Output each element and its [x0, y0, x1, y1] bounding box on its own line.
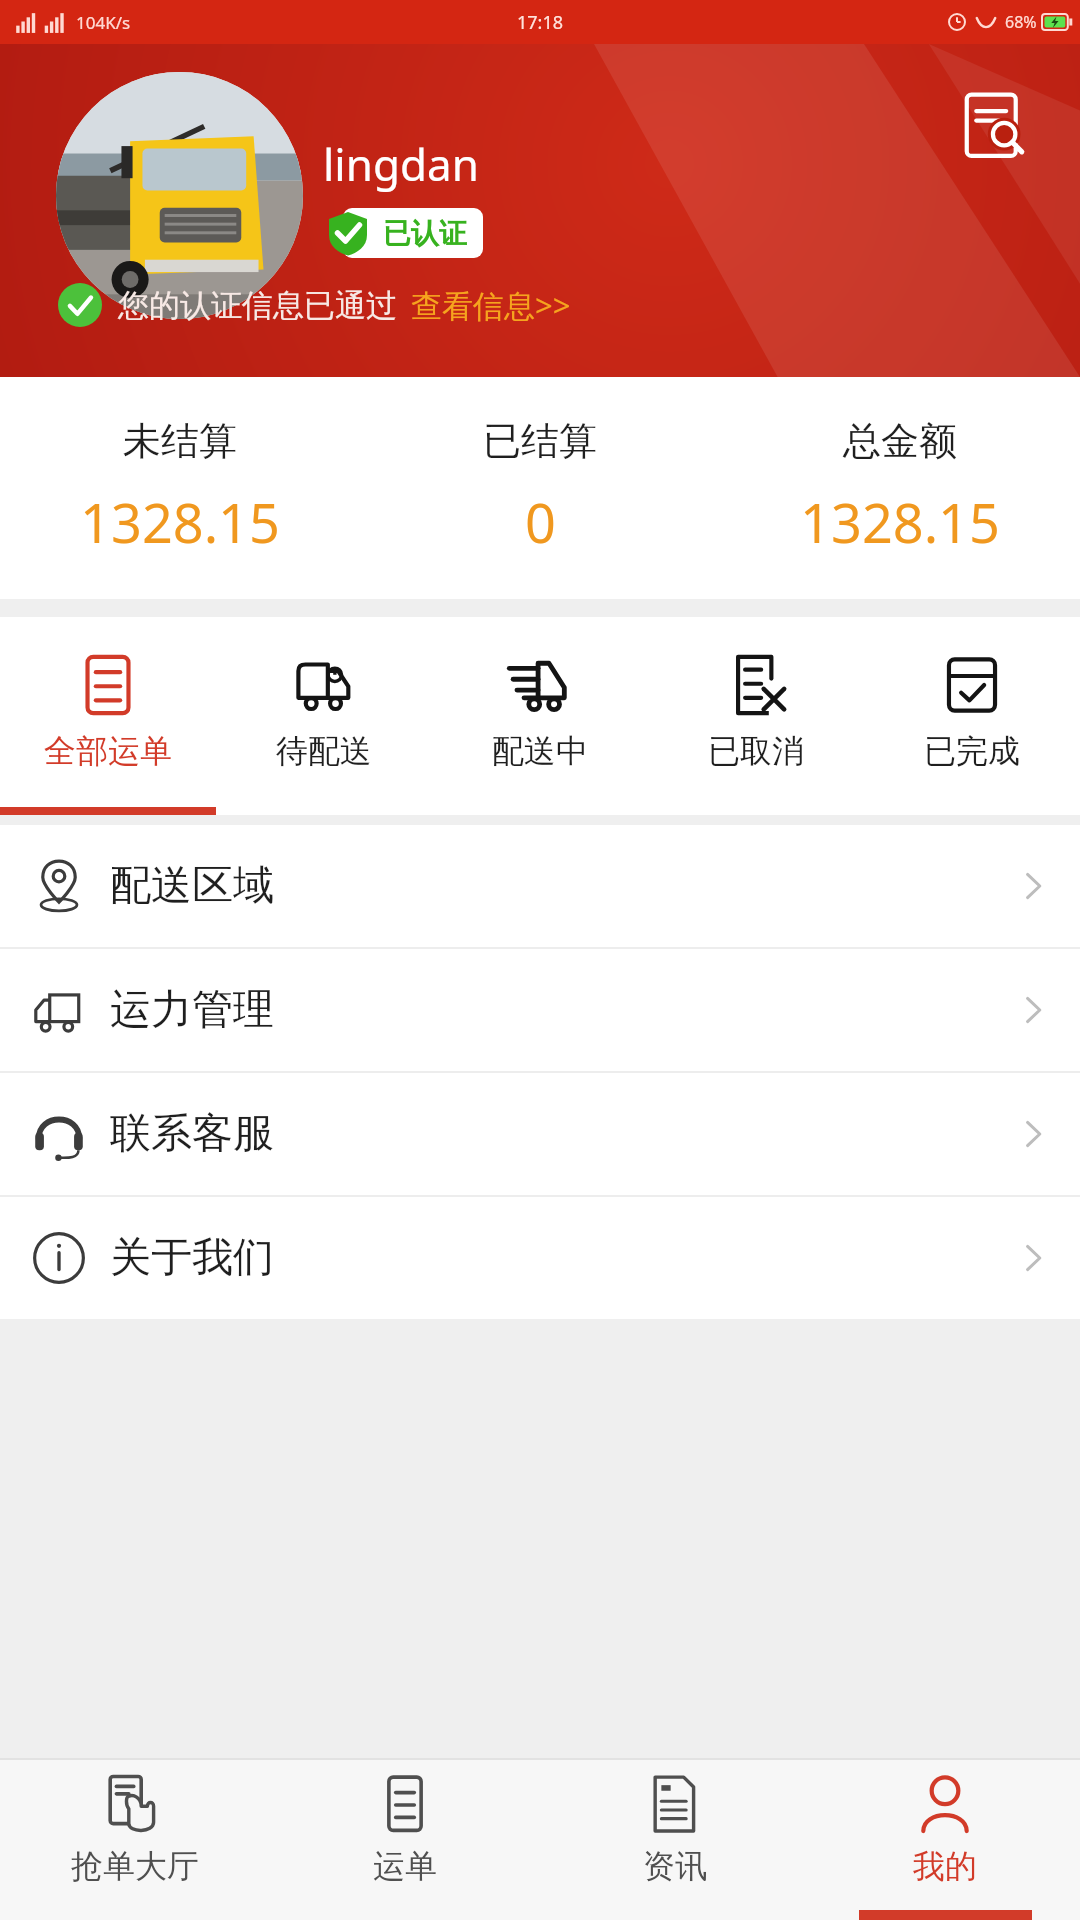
- staticText: 关于我们: [110, 1232, 274, 1284]
- staticText: 68%: [1005, 11, 1037, 33]
- staticText: 我的: [913, 1846, 977, 1886]
- staticText: 配送区域: [110, 860, 274, 912]
- button[interactable]: 未结算: [0, 377, 360, 599]
- button[interactable]: 关于我们: [0, 1197, 1080, 1319]
- button[interactable]: 已完成: [864, 617, 1080, 807]
- button[interactable]: 配送中: [432, 617, 648, 807]
- staticText: 全部运单: [44, 731, 172, 771]
- staticText: 已完成: [924, 731, 1020, 771]
- staticText: 联系客服: [110, 1108, 274, 1160]
- staticText: 1328.15: [800, 485, 1000, 559]
- staticText: 待配送: [276, 731, 372, 771]
- staticText: 0: [525, 485, 556, 559]
- button[interactable]: 已结算: [360, 377, 720, 599]
- staticText: 运单: [373, 1846, 437, 1886]
- staticText: 已取消: [708, 731, 804, 771]
- staticText: 未结算: [123, 417, 237, 465]
- button[interactable]: 我的: [810, 1760, 1080, 1920]
- button[interactable]: 运力管理: [0, 949, 1080, 1071]
- staticText: 104K/s: [76, 11, 131, 34]
- button[interactable]: Profile photo: [56, 72, 303, 319]
- staticText: 1328.15: [80, 485, 280, 559]
- button[interactable]: 联系客服: [0, 1073, 1080, 1195]
- button[interactable]: 抢单大厅: [0, 1760, 270, 1920]
- button[interactable]: 您的认证信息已通过: [58, 283, 571, 327]
- button[interactable]: 资讯: [540, 1760, 810, 1920]
- staticText: 资讯: [643, 1846, 707, 1886]
- staticText: 17:18: [517, 10, 564, 35]
- button[interactable]: 已取消: [648, 617, 864, 807]
- staticText: 已认证: [383, 216, 467, 251]
- staticText: 运力管理: [110, 984, 274, 1036]
- staticText: lingdan: [323, 134, 479, 194]
- button[interactable]: 运单: [270, 1760, 540, 1920]
- button[interactable]: 待配送: [216, 617, 432, 807]
- staticText: 总金额: [843, 417, 957, 465]
- staticText: 配送中: [492, 731, 588, 771]
- staticText: 查看信息>>: [411, 284, 571, 326]
- button[interactable]: 总金额: [720, 377, 1080, 599]
- staticText: 抢单大厅: [71, 1846, 199, 1886]
- button[interactable]: 配送区域: [0, 825, 1080, 947]
- button[interactable]: 全部运单: [0, 617, 216, 807]
- staticText: 您的认证信息已通过: [118, 286, 397, 325]
- staticText: 已结算: [483, 417, 597, 465]
- button[interactable]: Search orders: [956, 86, 1036, 166]
